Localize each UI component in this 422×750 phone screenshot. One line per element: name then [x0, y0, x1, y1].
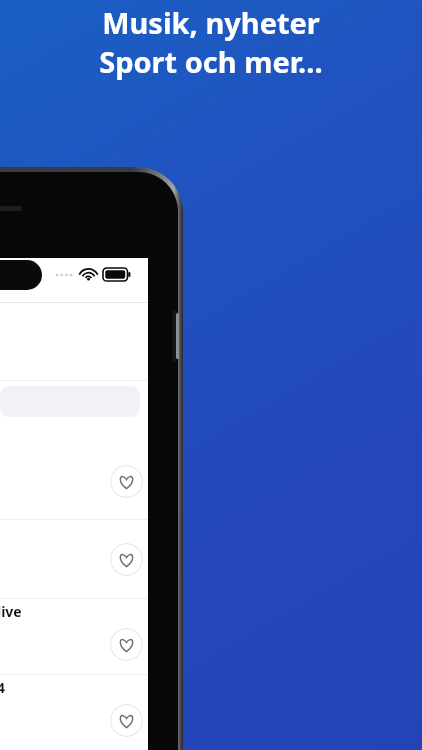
button[interactable]: 4 — [0, 675, 148, 750]
staticText: Musik, nyheter — [102, 3, 320, 42]
staticText: live — [0, 602, 22, 621]
staticText: Sport och mer… — [99, 42, 323, 81]
button[interactable]: Favorit — [110, 543, 143, 576]
button[interactable]: Favorit — [0, 443, 148, 519]
button[interactable]: Favorit — [110, 465, 143, 498]
button[interactable]: Favorit — [110, 628, 143, 661]
button[interactable]: live — [0, 599, 148, 674]
staticText: 4 — [0, 678, 6, 697]
button[interactable]: Favorit — [110, 704, 143, 737]
button[interactable]: Favorit — [0, 520, 148, 598]
